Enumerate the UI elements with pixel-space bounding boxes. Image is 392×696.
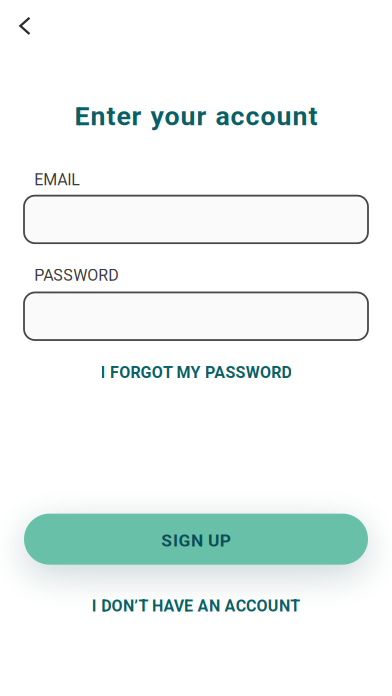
button[interactable]: SIGN UP <box>24 514 368 565</box>
button[interactable]: I FORGOT MY PASSWORD <box>24 363 368 382</box>
staticText: I FORGOT MY PASSWORD <box>101 363 291 382</box>
staticText: Enter your account <box>74 101 317 132</box>
button[interactable]: Back <box>0 0 47 48</box>
staticText: PASSWORD <box>34 266 119 285</box>
staticText: SIGN UP <box>161 530 231 551</box>
button[interactable]: I DON’T HAVE AN ACCOUNT <box>24 597 368 615</box>
button[interactable]: Email <box>24 196 368 243</box>
staticText: EMAIL <box>34 170 80 189</box>
staticText: I DON’T HAVE AN ACCOUNT <box>92 597 300 615</box>
button[interactable]: Password <box>24 292 368 340</box>
